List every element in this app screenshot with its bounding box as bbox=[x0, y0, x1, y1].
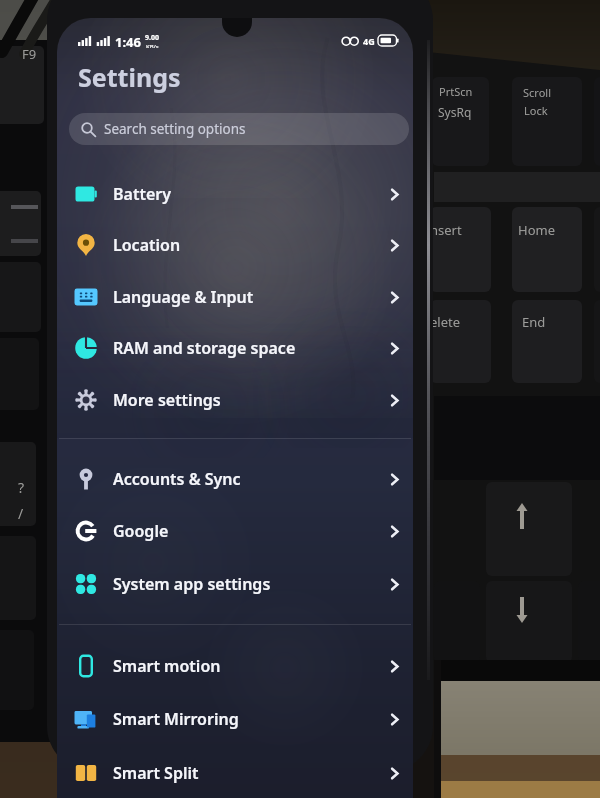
staticText: Smart Mirroring bbox=[113, 708, 239, 730]
button[interactable]: Battery bbox=[57, 169, 413, 219]
staticText: elete bbox=[430, 313, 461, 331]
button[interactable]: Accounts & Sync bbox=[57, 454, 413, 504]
button[interactable]: Language & Input bbox=[57, 272, 413, 322]
staticText: F9 bbox=[22, 45, 37, 63]
button[interactable]: Search setting options bbox=[69, 113, 409, 145]
staticText: Google bbox=[113, 520, 169, 542]
staticText: 4G bbox=[363, 35, 375, 47]
staticText: nsert bbox=[430, 221, 462, 239]
staticText: Scroll bbox=[523, 85, 551, 100]
staticText: System app settings bbox=[113, 573, 271, 595]
staticText: SysRq bbox=[438, 104, 472, 120]
button[interactable]: Google bbox=[57, 506, 413, 556]
button[interactable]: Smart Split bbox=[57, 748, 413, 798]
button[interactable]: Smart motion bbox=[57, 641, 413, 691]
staticText: Smart Split bbox=[113, 762, 199, 784]
staticText: / bbox=[18, 504, 24, 523]
button[interactable]: Smart Mirroring bbox=[57, 694, 413, 744]
staticText: Location bbox=[113, 234, 181, 256]
staticText: 1:46 bbox=[115, 33, 141, 48]
staticText: End bbox=[522, 313, 546, 331]
staticText: Smart motion bbox=[113, 655, 221, 677]
staticText: RAM and storage space bbox=[113, 337, 296, 359]
staticText: Accounts & Sync bbox=[113, 468, 241, 490]
staticText: Settings bbox=[78, 60, 181, 94]
button[interactable]: Location bbox=[57, 220, 413, 270]
staticText: Lock bbox=[524, 103, 548, 118]
staticText: ? bbox=[18, 478, 25, 497]
staticText: KB/s bbox=[146, 43, 159, 48]
staticText: PrtScn bbox=[439, 84, 473, 99]
button[interactable]: RAM and storage space bbox=[57, 323, 413, 373]
staticText: More settings bbox=[113, 389, 221, 411]
button[interactable]: System app settings bbox=[57, 559, 413, 609]
staticText: Battery bbox=[113, 183, 171, 205]
staticText: Home bbox=[518, 221, 555, 239]
staticText: Language & Input bbox=[113, 286, 254, 308]
staticText: Search setting options bbox=[104, 120, 246, 138]
button[interactable]: More settings bbox=[57, 375, 413, 425]
staticText: 9.00 bbox=[145, 33, 159, 43]
